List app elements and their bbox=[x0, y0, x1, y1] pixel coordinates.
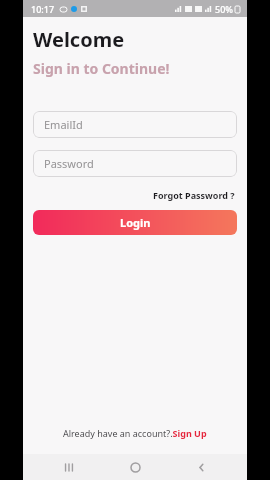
button[interactable]: Password bbox=[33, 150, 237, 177]
staticText: Forgot Password ? bbox=[153, 189, 235, 201]
staticText: 10:17 bbox=[31, 3, 55, 15]
staticText: Login bbox=[120, 215, 151, 230]
staticText: Sign in to Continue! bbox=[33, 59, 170, 78]
button[interactable]: Recent apps bbox=[49, 454, 89, 480]
staticText: Already have an account?.Sign Up bbox=[63, 427, 207, 439]
staticText: 50% bbox=[215, 3, 233, 15]
button[interactable]: Home bbox=[115, 454, 155, 480]
button[interactable]: Already have an account?.Sign Up bbox=[23, 423, 247, 443]
button[interactable]: Back bbox=[181, 454, 221, 480]
staticText: Welcome bbox=[33, 26, 125, 53]
staticText: Password bbox=[44, 156, 94, 171]
staticText: EmailId bbox=[44, 117, 83, 132]
button[interactable]: EmailId bbox=[33, 111, 237, 138]
button[interactable]: Login bbox=[33, 210, 237, 235]
button[interactable]: Forgot Password ? bbox=[151, 187, 237, 203]
